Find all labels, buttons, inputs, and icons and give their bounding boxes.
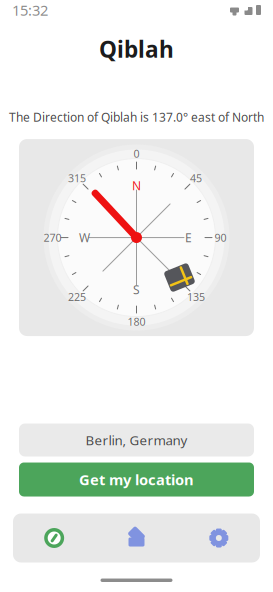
staticText: 90 — [130, 146, 142, 161]
staticText: W — [79, 230, 90, 245]
staticText: 0 — [133, 146, 139, 161]
button[interactable]: Settings — [178, 513, 260, 562]
staticText: 270 — [127, 146, 145, 161]
staticText: Get my location — [79, 470, 194, 489]
button[interactable]: Qiblah compass — [13, 513, 95, 562]
staticText: Berlin, Germany — [85, 431, 187, 449]
staticText: The Direction of Qiblah is 137.0° east o… — [9, 109, 264, 125]
staticText: S — [133, 282, 140, 297]
staticText: N — [132, 178, 141, 193]
staticText: 180 — [127, 146, 145, 161]
button[interactable]: Berlin, Germany — [19, 423, 254, 456]
staticText: 315 — [127, 146, 145, 161]
staticText: 225 — [127, 146, 145, 161]
staticText: E — [185, 230, 192, 245]
staticText: 15:32 — [12, 0, 48, 20]
staticText: Qiblah — [99, 34, 174, 64]
button[interactable]: Home — [95, 513, 178, 562]
button[interactable]: Get my location — [19, 462, 254, 496]
staticText: 45 — [130, 146, 142, 161]
staticText: 135 — [127, 146, 145, 161]
